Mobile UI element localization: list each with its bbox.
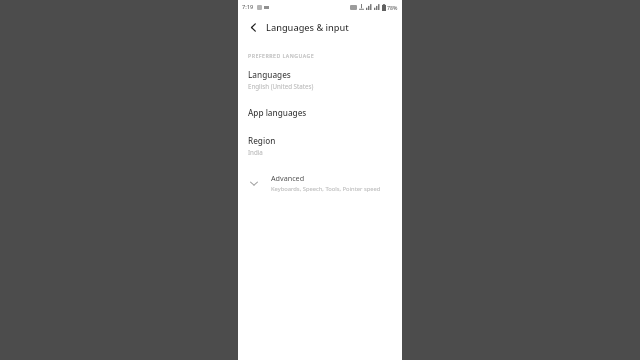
staticText: Languages & input <box>266 21 349 34</box>
button[interactable]: Back <box>244 18 263 37</box>
button[interactable]: Region <box>238 134 402 157</box>
staticText: PREFERRED LANGUAGE <box>248 52 315 59</box>
staticText: Region <box>248 135 276 146</box>
staticText: Keyboards, Speech, Tools, Pointer speed <box>271 185 381 193</box>
staticText: 7:19 <box>242 3 254 11</box>
button[interactable]: Languages <box>238 68 402 91</box>
staticText: English (United States) <box>248 82 314 90</box>
button[interactable]: Advanced <box>238 170 402 196</box>
staticText: 78% <box>387 4 398 11</box>
staticText: Languages <box>248 69 291 80</box>
staticText: App languages <box>248 107 307 118</box>
button[interactable]: App languages <box>238 106 402 119</box>
staticText: Advanced <box>271 173 305 183</box>
staticText: India <box>248 148 263 156</box>
